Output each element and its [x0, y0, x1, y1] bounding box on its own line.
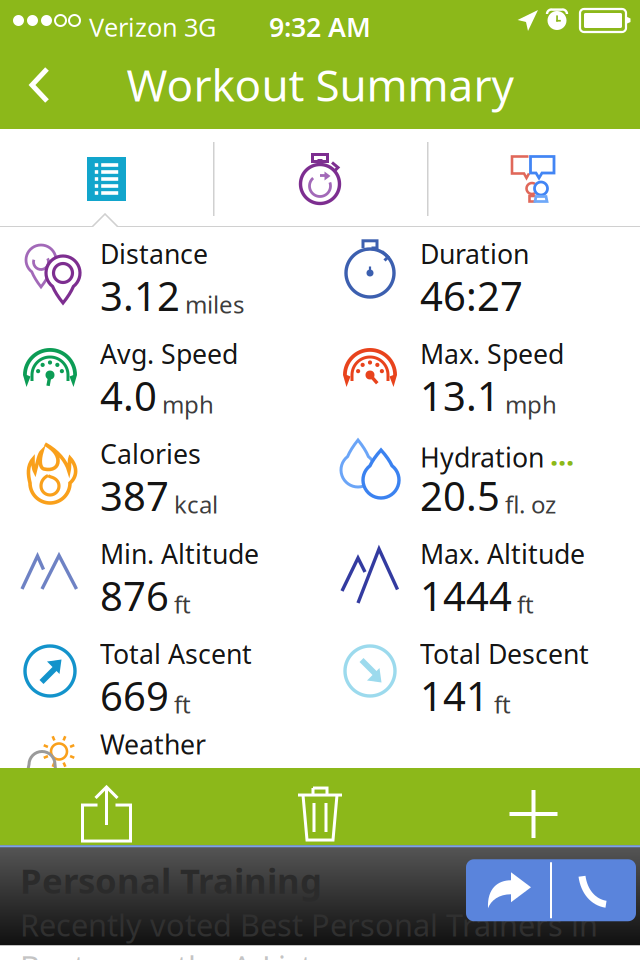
staticText: 876	[100, 569, 169, 622]
button[interactable]: Summary	[0, 129, 213, 225]
staticText: Weather	[100, 726, 206, 762]
button[interactable]: Share	[0, 768, 213, 860]
staticText: ft	[517, 588, 534, 620]
staticText: 669	[100, 669, 169, 722]
staticText: Duration	[420, 236, 529, 271]
staticText: Distance	[100, 236, 208, 271]
staticText: Boston on the A-List	[20, 946, 312, 960]
staticText: 13.1	[420, 369, 500, 422]
staticText: Calories	[100, 436, 201, 471]
staticText: miles	[185, 288, 244, 320]
button[interactable]: Friends	[427, 129, 640, 225]
staticText: 20.5	[420, 469, 500, 522]
button[interactable]: Back	[4, 45, 76, 125]
staticText: 46:27	[420, 269, 523, 322]
staticText: fl. oz	[505, 488, 556, 520]
button[interactable]: Laps	[213, 129, 427, 225]
staticText: Max. Altitude	[420, 536, 585, 571]
staticText: Max. Speed	[420, 336, 564, 371]
staticText: Workout Summary	[126, 55, 513, 114]
staticText: 387	[100, 469, 169, 522]
staticText: ft	[174, 588, 191, 620]
staticText: Hydration	[420, 439, 544, 475]
staticText: kcal	[174, 488, 218, 520]
staticText: Avg. Speed	[100, 336, 238, 371]
button[interactable]: Share advert	[466, 859, 550, 921]
staticText: 141	[420, 669, 489, 722]
staticText: 4.0	[100, 369, 157, 422]
button[interactable]: Delete	[213, 768, 427, 860]
staticText: ...	[550, 435, 574, 474]
staticText: mph	[505, 388, 557, 420]
staticText: 1444	[420, 569, 512, 622]
staticText: ft	[494, 688, 511, 720]
staticText: Total Ascent	[100, 636, 252, 671]
staticText: Personal Training	[20, 857, 322, 903]
button[interactable]: Call	[552, 859, 636, 921]
staticText: mph	[162, 388, 214, 420]
staticText: Min. Altitude	[100, 536, 259, 571]
staticText: 3.12	[100, 269, 180, 322]
staticText: Verizon	[89, 10, 178, 44]
staticText: Total Descent	[420, 636, 589, 671]
staticText: 9:32 AM	[269, 9, 371, 44]
staticText: 3G	[184, 10, 216, 44]
staticText: Recently voted Best Personal Trainers in	[20, 904, 598, 945]
button[interactable]: Add	[427, 768, 640, 860]
staticText: ft	[174, 688, 191, 720]
